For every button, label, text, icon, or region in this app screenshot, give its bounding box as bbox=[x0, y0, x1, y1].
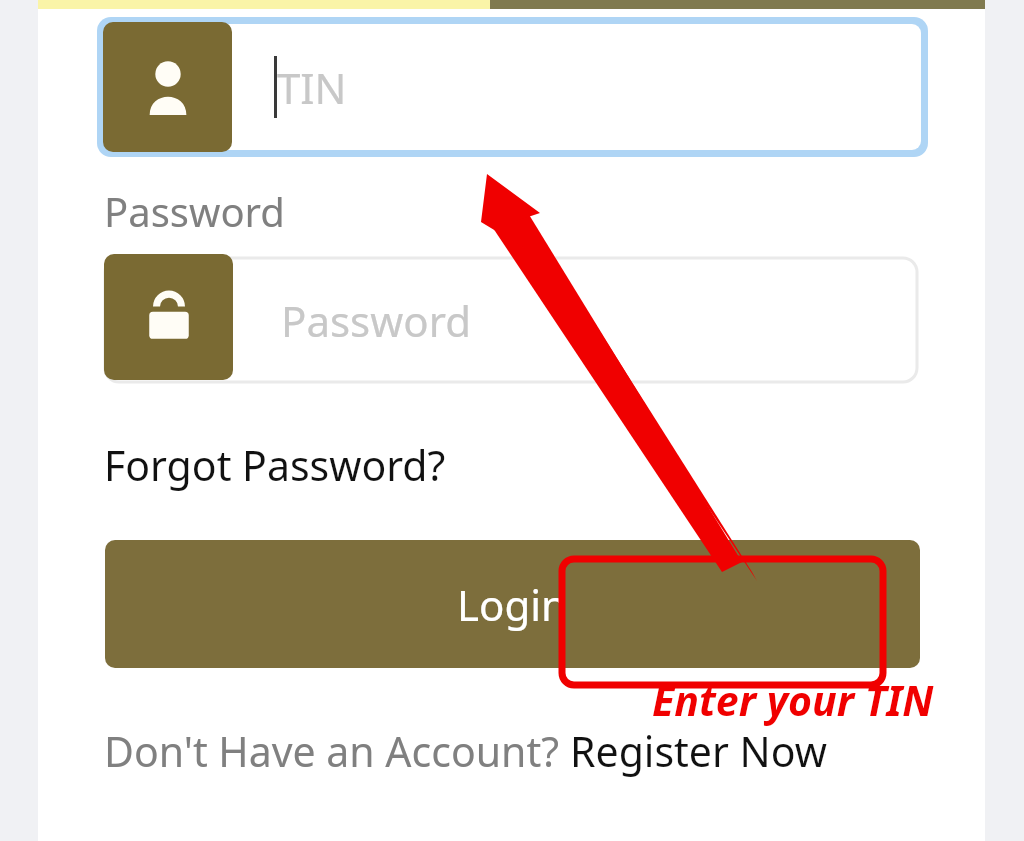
button[interactable]: Forgot Password? bbox=[104, 437, 446, 493]
staticText: Password bbox=[104, 184, 285, 238]
staticText: Enter your TIN bbox=[652, 672, 934, 728]
staticText: TIN bbox=[277, 59, 347, 116]
staticText: Forgot Password? bbox=[104, 437, 446, 493]
button[interactable]: TIN bbox=[97, 17, 928, 157]
staticText: Password bbox=[281, 292, 471, 349]
button[interactable]: Login bbox=[105, 540, 920, 668]
button[interactable]: Password bbox=[104, 257, 918, 383]
staticText: Don't Have an Account? bbox=[104, 723, 570, 779]
button[interactable]: Register Now bbox=[570, 723, 827, 779]
staticText: Login bbox=[457, 576, 568, 633]
staticText: Register Now bbox=[570, 723, 827, 779]
